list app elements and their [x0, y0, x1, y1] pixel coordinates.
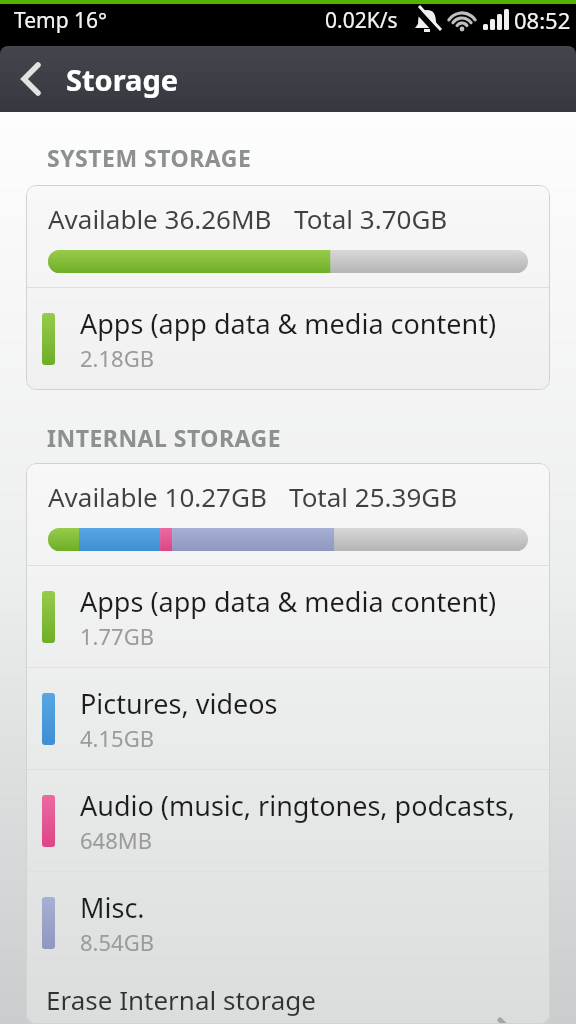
staticText: Storage	[66, 60, 179, 99]
button[interactable]	[0, 46, 62, 112]
staticText: Available 36.26MB	[48, 201, 272, 236]
button[interactable]: Erase Internal storage	[26, 974, 550, 1024]
staticText: Temp 16°	[14, 6, 108, 35]
staticText: Available 10.27GB	[48, 479, 267, 514]
button[interactable]: Apps (app data & media content)	[26, 566, 550, 667]
staticText: Total 3.70GB	[294, 201, 448, 236]
staticText: Misc.	[80, 889, 145, 926]
button[interactable]: Audio (music, ringtones, podcasts, etc.)	[26, 770, 550, 871]
staticText: 2.18GB	[80, 343, 154, 373]
staticText: Pictures, videos	[80, 685, 278, 722]
staticText: 1.77GB	[80, 621, 154, 651]
button[interactable]: Pictures, videos	[26, 668, 550, 769]
staticText: 08:52	[514, 5, 571, 35]
staticText: Apps (app data & media content)	[80, 305, 497, 342]
staticText: Erase Internal storage	[46, 982, 316, 1017]
staticText: Total 25.39GB	[289, 479, 458, 514]
button[interactable]: Apps (app data & media content)	[26, 288, 550, 389]
staticText: SYSTEM STORAGE	[47, 142, 252, 173]
button[interactable]: Misc.	[26, 872, 550, 973]
staticText: Apps (app data & media content)	[80, 583, 497, 620]
staticText: Audio (music, ringtones, podcasts, etc.)	[80, 787, 550, 824]
staticText: 0.02K/s	[325, 6, 398, 35]
staticText: 8.54GB	[80, 927, 154, 957]
staticText: INTERNAL STORAGE	[47, 422, 282, 453]
staticText: 648MB	[80, 825, 153, 855]
staticText: 4.15GB	[80, 723, 154, 753]
